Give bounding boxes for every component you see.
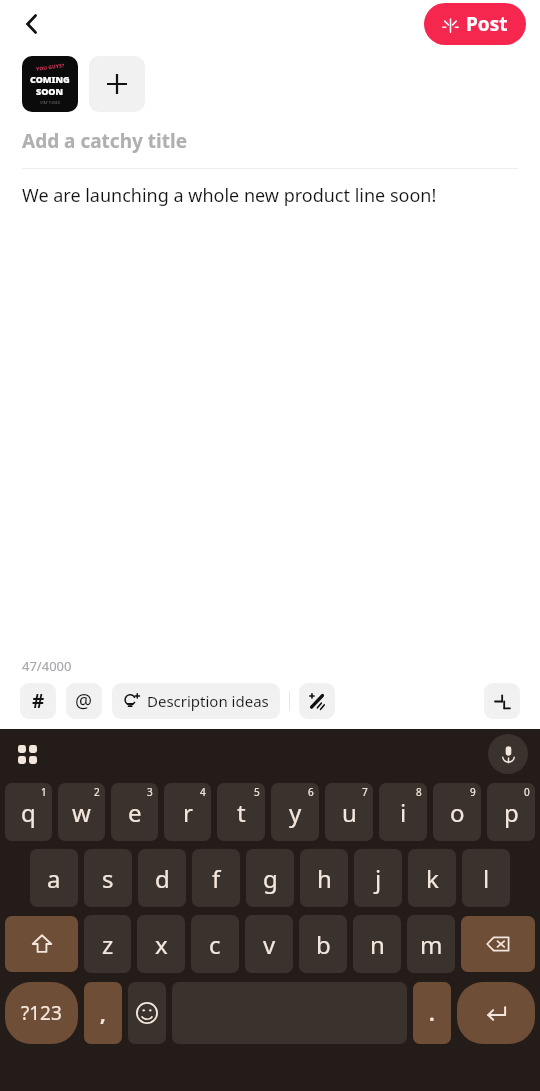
staticText: Description ideas	[147, 691, 269, 711]
staticText: 2	[94, 785, 100, 799]
button[interactable]: i	[379, 783, 427, 841]
button[interactable]: r	[164, 783, 211, 841]
staticText: m	[420, 928, 443, 961]
staticText: .	[429, 1000, 435, 1027]
button[interactable]: h	[300, 849, 348, 907]
staticText: s	[102, 862, 114, 895]
button[interactable]: q	[5, 783, 52, 841]
staticText: 47/4000	[22, 657, 72, 675]
staticText: y	[289, 796, 302, 829]
button[interactable]: .	[413, 982, 451, 1044]
button[interactable]: k	[408, 849, 456, 907]
staticText: 0	[524, 785, 530, 799]
staticText: SOON	[36, 85, 64, 97]
button[interactable]: t	[217, 783, 265, 841]
staticText: STAY TUNED	[40, 100, 61, 105]
button[interactable]: g	[246, 849, 294, 907]
staticText: We are launching a whole new product lin…	[22, 183, 437, 208]
button[interactable]: Cover image	[22, 56, 78, 112]
staticText: 3	[147, 785, 153, 799]
staticText: COMING	[30, 73, 70, 85]
button[interactable]: Backspace	[461, 916, 535, 972]
staticText: #	[32, 688, 45, 714]
button[interactable]: Back	[12, 4, 52, 44]
staticText: x	[155, 928, 168, 961]
button[interactable]: Mention	[66, 683, 102, 719]
staticText: u	[342, 796, 357, 829]
button[interactable]: e	[111, 783, 158, 841]
staticText: f	[212, 862, 221, 895]
button[interactable]: Add image	[89, 56, 145, 112]
button[interactable]: Post	[424, 3, 526, 45]
staticText: j	[375, 862, 382, 895]
staticText: 8	[416, 785, 422, 799]
staticText: ?123	[21, 1000, 62, 1026]
button[interactable]: Add a catchy title	[22, 128, 518, 154]
button[interactable]: x	[137, 915, 185, 973]
button[interactable]: o	[433, 783, 481, 841]
staticText: Add a catchy title	[22, 128, 187, 154]
button[interactable]: Shift	[5, 916, 78, 972]
staticText: 7	[362, 785, 368, 799]
button[interactable]: y	[271, 783, 319, 841]
staticText: e	[128, 796, 142, 829]
staticText: Post	[466, 11, 508, 37]
staticText: 1	[41, 785, 47, 799]
staticText: YOU GUYS?	[36, 62, 65, 73]
button[interactable]: We are launching a whole new product lin…	[22, 183, 518, 208]
staticText: z	[102, 928, 114, 961]
staticText: p	[504, 796, 519, 829]
staticText: 9	[470, 785, 476, 799]
button[interactable]: l	[462, 849, 510, 907]
staticText: k	[426, 862, 439, 895]
button[interactable]: ,	[84, 982, 122, 1044]
staticText: i	[400, 796, 407, 829]
button[interactable]: Enter	[457, 982, 535, 1044]
staticText: a	[47, 862, 61, 895]
staticText: q	[21, 796, 36, 829]
button[interactable]: m	[407, 915, 455, 973]
staticText: 5	[254, 785, 260, 799]
button[interactable]: Hide keyboard	[484, 683, 520, 719]
button[interactable]: s	[84, 849, 132, 907]
button[interactable]: Hashtag	[20, 683, 56, 719]
staticText: r	[183, 796, 193, 829]
staticText: c	[209, 928, 221, 961]
button[interactable]: v	[245, 915, 293, 973]
button[interactable]: Magic edit	[299, 683, 335, 719]
button[interactable]: Voice input	[488, 734, 528, 774]
staticText: 6	[308, 785, 314, 799]
button[interactable]: w	[58, 783, 105, 841]
button[interactable]: n	[353, 915, 401, 973]
button[interactable]: z	[84, 915, 131, 973]
button[interactable]: Description ideas	[112, 683, 280, 719]
button[interactable]: ?123	[5, 982, 78, 1044]
button[interactable]: d	[138, 849, 186, 907]
button[interactable]: b	[299, 915, 347, 973]
button[interactable]: c	[191, 915, 239, 973]
button[interactable]: f	[192, 849, 240, 907]
button[interactable]: p	[487, 783, 535, 841]
button[interactable]: u	[325, 783, 373, 841]
button[interactable]: Keyboard menu	[8, 735, 46, 773]
staticText: g	[263, 862, 278, 895]
staticText: v	[263, 928, 276, 961]
staticText: @	[75, 688, 93, 714]
button[interactable]: a	[30, 849, 78, 907]
staticText: n	[370, 928, 385, 961]
staticText: d	[155, 862, 170, 895]
staticText: 4	[200, 785, 206, 799]
staticText: w	[72, 796, 91, 829]
staticText: o	[450, 796, 465, 829]
staticText: b	[316, 928, 331, 961]
button[interactable]: Emoji	[128, 982, 166, 1044]
button[interactable]: j	[354, 849, 402, 907]
staticText: ,	[100, 1000, 106, 1027]
staticText: t	[237, 796, 246, 829]
staticText: h	[317, 862, 332, 895]
staticText: l	[483, 862, 490, 895]
